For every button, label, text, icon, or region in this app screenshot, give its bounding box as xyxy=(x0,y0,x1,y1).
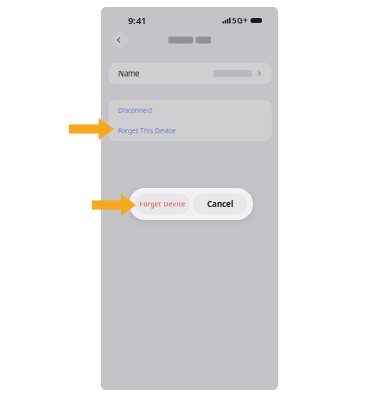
staticText: Disconnect xyxy=(118,106,152,115)
button[interactable]: Disconnect xyxy=(108,100,271,120)
button[interactable]: Cancel xyxy=(193,193,247,214)
button[interactable]: Name xyxy=(108,63,271,84)
staticText: Name xyxy=(118,68,140,79)
staticText: Forget This Device xyxy=(118,126,176,135)
button[interactable]: Back xyxy=(110,31,128,49)
staticText: 9:41 xyxy=(128,14,146,27)
staticText: 5G+ xyxy=(232,15,248,26)
button[interactable]: Forget This Device xyxy=(108,120,271,141)
staticText: Cancel xyxy=(207,199,233,209)
button[interactable]: Forget Device xyxy=(135,193,190,214)
staticText: Forget Device xyxy=(139,200,185,208)
